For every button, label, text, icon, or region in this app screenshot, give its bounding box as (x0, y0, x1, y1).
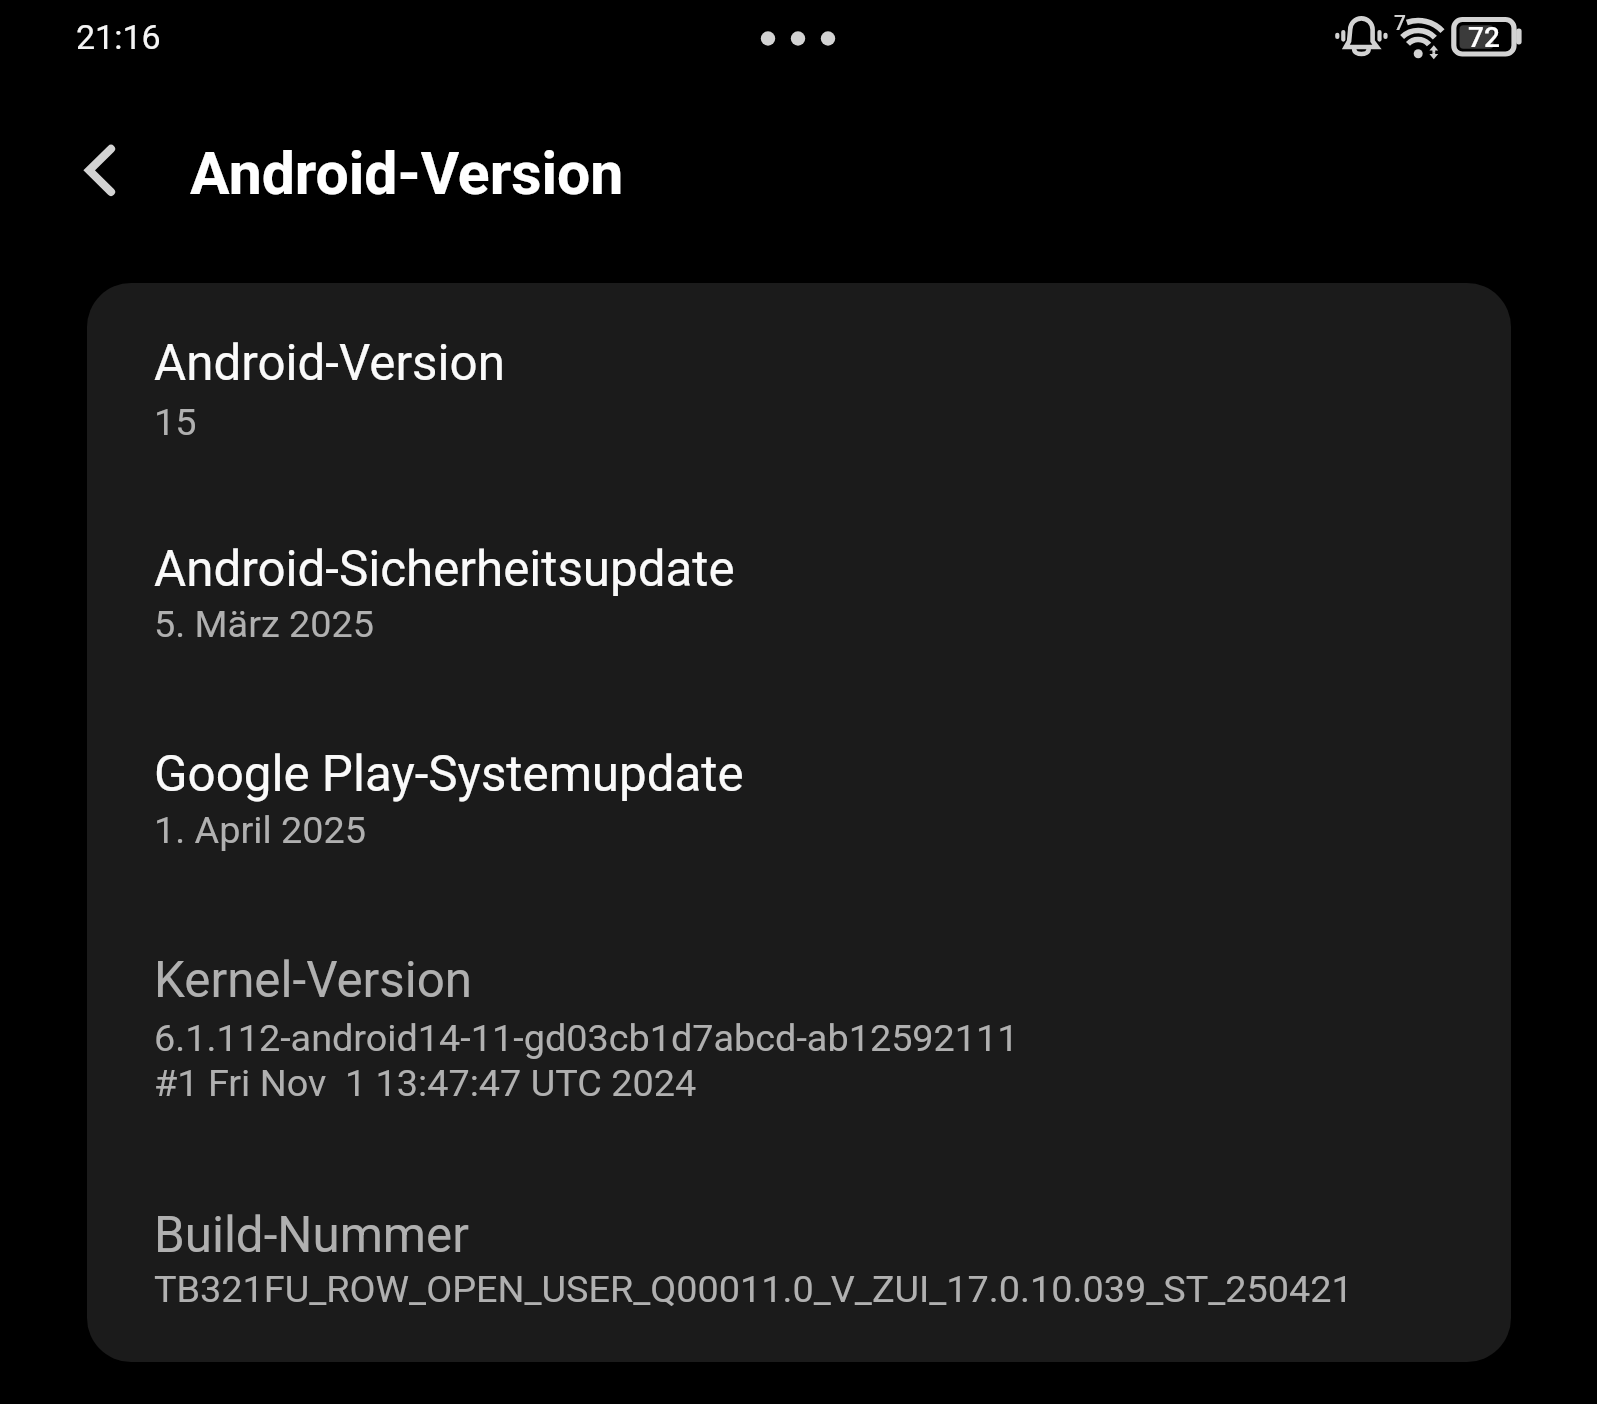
staticText: Android-Sicherheitsupdate (154, 540, 735, 598)
staticText: Android-Version (190, 139, 624, 208)
staticText: 5. März 2025 (154, 602, 375, 646)
staticText: 72 (1468, 21, 1500, 54)
staticText: 21:16 (76, 17, 161, 57)
button[interactable]: Back (50, 110, 150, 232)
staticText: Android-Version (154, 334, 505, 392)
staticText: 7 (1394, 11, 1406, 36)
button[interactable]: Android-Sicherheitsupdate (87, 489, 1511, 694)
staticText: 1. April 2025 (154, 808, 366, 852)
button[interactable]: Google Play-Systemupdate (87, 694, 1511, 900)
button[interactable]: Build-Nummer (87, 1155, 1511, 1362)
staticText: 15 (154, 400, 197, 444)
button[interactable]: Android-Version (87, 283, 1511, 489)
staticText: TB321FU_ROW_OPEN_USER_Q00011.0_V_ZUI_17.… (154, 1267, 1353, 1311)
button[interactable]: Kernel-Version (87, 900, 1511, 1155)
staticText: Build-Nummer (154, 1206, 469, 1264)
staticText: 6.1.112-android14-11-gd03cb1d7abcd-ab125… (154, 1016, 1019, 1105)
staticText: Kernel-Version (154, 951, 473, 1009)
staticText: Google Play-Systemupdate (154, 745, 744, 803)
